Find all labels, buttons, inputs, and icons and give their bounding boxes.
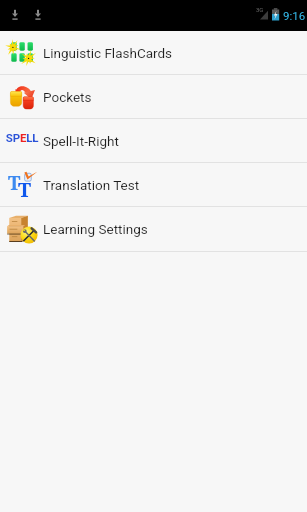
button[interactable]: T bbox=[0, 163, 307, 206]
button[interactable]: SPELL bbox=[0, 119, 307, 162]
staticText: Learning Settings bbox=[43, 221, 148, 237]
button[interactable]: Linguistic FlashCards bbox=[0, 31, 307, 74]
staticText: SPELL bbox=[0, 131, 45, 144]
staticText: Translation Test bbox=[43, 177, 140, 193]
staticText: Pockets bbox=[43, 89, 92, 105]
staticText: T bbox=[8, 170, 21, 196]
button[interactable]: Pockets bbox=[0, 75, 307, 118]
staticText: T bbox=[18, 176, 32, 203]
button[interactable]: Learning Settings bbox=[0, 207, 307, 250]
staticText: 3G bbox=[256, 6, 264, 13]
staticText: Linguistic FlashCards bbox=[43, 45, 173, 61]
staticText: 9:16 bbox=[283, 9, 306, 22]
staticText: Spell-It-Right bbox=[43, 133, 119, 149]
